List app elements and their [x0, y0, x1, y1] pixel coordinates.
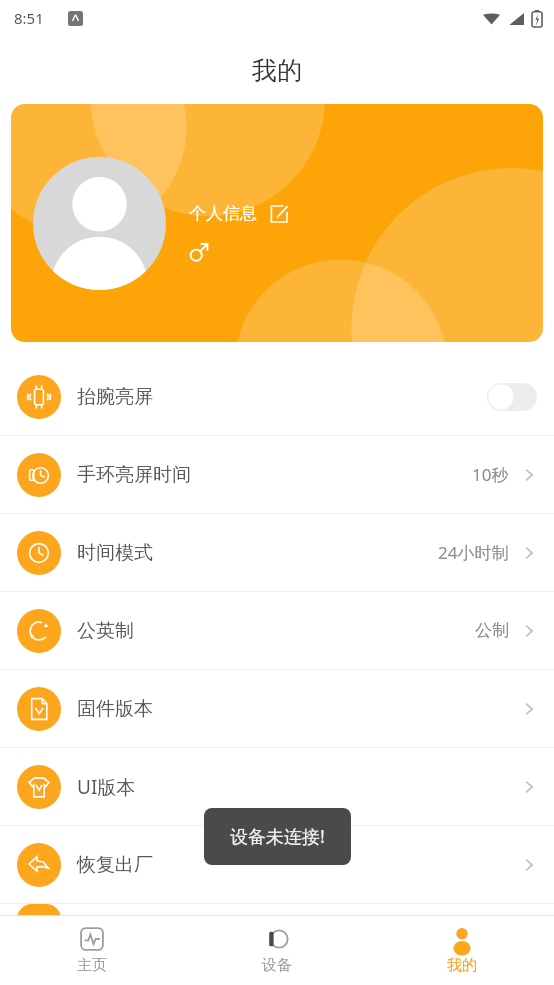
- button[interactable]: 时间模式: [0, 514, 554, 592]
- staticText: 抬腕亮屏: [77, 385, 153, 409]
- staticText: 我的: [447, 956, 477, 975]
- button[interactable]: 我的: [369, 916, 554, 985]
- button[interactable]: 恢复出厂: [0, 826, 554, 904]
- button[interactable]: 公英制: [0, 592, 554, 670]
- staticText: 24小时制: [438, 541, 509, 564]
- staticText: 主页: [77, 956, 107, 975]
- button[interactable]: 手环亮屏时间: [0, 436, 554, 514]
- staticText: 时间模式: [77, 541, 153, 565]
- button[interactable]: 固件版本: [0, 670, 554, 748]
- button[interactable]: 主页: [0, 916, 184, 985]
- staticText: 8:51: [14, 8, 44, 28]
- staticText: 设备: [262, 956, 292, 975]
- staticText: 恢复出厂: [77, 853, 153, 877]
- button[interactable]: Raise to wake toggle: [487, 383, 537, 411]
- button[interactable]: Edit profile: [269, 204, 289, 224]
- staticText: 固件版本: [77, 697, 153, 721]
- staticText: 我的: [252, 55, 302, 86]
- staticText: UI版本: [77, 774, 136, 800]
- staticText: 手环亮屏时间: [77, 463, 191, 487]
- button[interactable]: 设备: [184, 916, 369, 985]
- button[interactable]: UI版本: [0, 748, 554, 826]
- staticText: 公英制: [77, 619, 134, 643]
- staticText: 个人信息: [189, 203, 257, 224]
- staticText: 10秒: [472, 463, 509, 486]
- button[interactable]: 抬腕亮屏: [0, 358, 554, 436]
- staticText: 设备未连接!: [230, 824, 325, 849]
- button[interactable]: 个人信息: [11, 104, 543, 342]
- staticText: 公制: [475, 620, 509, 641]
